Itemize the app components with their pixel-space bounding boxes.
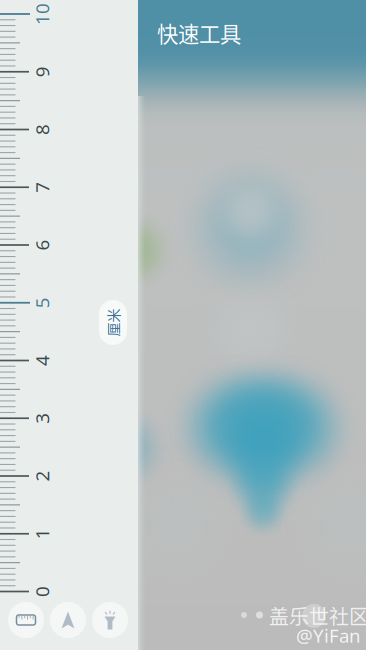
staticText: @YiFan <box>296 623 361 648</box>
staticText: 盖乐世社区 <box>269 601 366 630</box>
button[interactable]: Compass <box>50 602 86 638</box>
staticText: 10 <box>31 2 53 26</box>
staticText: 4 <box>36 348 47 373</box>
staticText: 7 <box>36 175 47 200</box>
staticText: 5 <box>36 290 47 315</box>
staticText: 2 <box>36 464 47 488</box>
staticText: 1 <box>36 521 47 546</box>
staticText: 3 <box>36 406 47 431</box>
button[interactable]: 厘米 <box>99 300 127 345</box>
staticText: 6 <box>36 233 47 257</box>
staticText: 厘米 <box>99 312 127 333</box>
staticText: 快速工具 <box>157 18 241 48</box>
button[interactable]: Ruler <box>8 602 44 638</box>
staticText: 0 <box>36 579 47 604</box>
staticText: 8 <box>36 117 47 142</box>
button[interactable]: Flashlight <box>92 602 128 638</box>
staticText: 9 <box>36 59 47 84</box>
